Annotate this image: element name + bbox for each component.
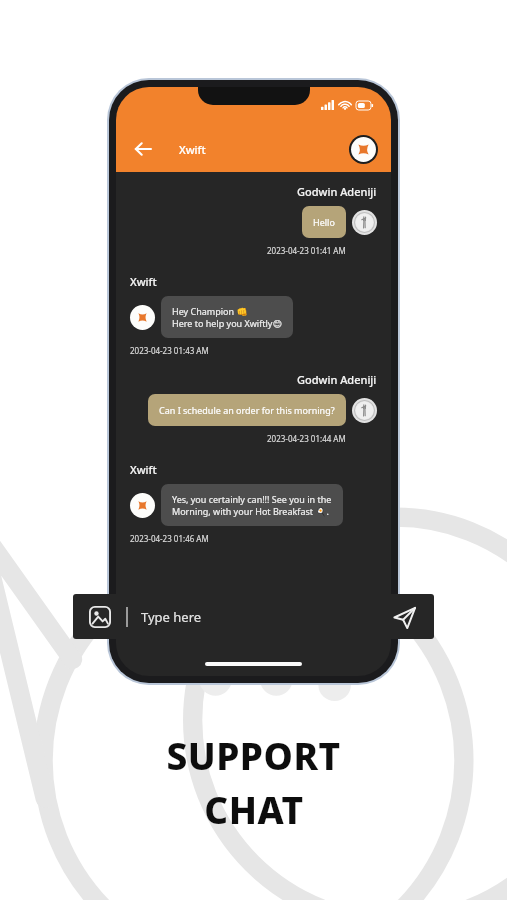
button[interactable]: Can I schedule an order for this morning…: [148, 394, 346, 426]
staticText: CHAT: [204, 784, 304, 834]
button[interactable]: Back: [129, 135, 157, 163]
staticText: Can I schedule an order for this morning…: [159, 404, 335, 416]
staticText: 2023-04-23 01:41 AM: [267, 245, 346, 256]
button[interactable]: Hello: [302, 206, 346, 238]
staticText: 2023-04-23 01:44 AM: [267, 433, 346, 444]
button[interactable]: Type here: [141, 608, 384, 626]
staticText: Hello: [313, 216, 335, 228]
staticText: Yes, you certainly can!!! See you in the…: [172, 493, 332, 517]
button[interactable]: Close chat: [349, 135, 378, 164]
staticText: 2023-04-23 01:46 AM: [130, 533, 209, 544]
staticText: Godwin Adeniji: [297, 372, 377, 387]
staticText: Godwin Adeniji: [297, 184, 377, 199]
staticText: Type here: [141, 608, 202, 626]
staticText: 2023-04-23 01:43 AM: [130, 345, 209, 356]
button[interactable]: Yes, you certainly can!!! See you in the…: [161, 484, 343, 526]
button[interactable]: Hey Champion 👊 Here to help you Xwiftly😊: [161, 296, 293, 338]
staticText: Xwift: [130, 274, 157, 289]
button[interactable]: Send: [384, 597, 424, 637]
staticText: SUPPORT: [166, 730, 341, 780]
staticText: Hey Champion 👊 Here to help you Xwiftly😊: [172, 305, 282, 329]
button[interactable]: Attach image: [87, 604, 113, 630]
staticText: Xwift: [179, 142, 206, 157]
staticText: Xwift: [130, 462, 157, 477]
